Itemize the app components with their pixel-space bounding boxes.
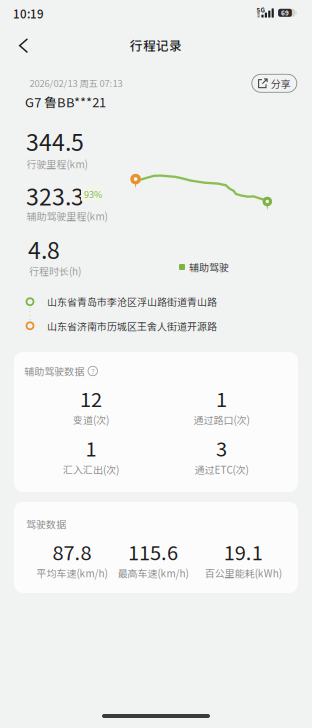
staticText: 10:19 bbox=[13, 5, 44, 22]
staticText: 3 bbox=[216, 433, 227, 462]
staticText: 323.3 bbox=[26, 179, 84, 212]
button[interactable]: 分享 bbox=[252, 74, 297, 92]
staticText: 1 bbox=[85, 433, 96, 462]
staticText: 69 bbox=[281, 8, 289, 17]
staticText: 驾驶数据 bbox=[26, 517, 66, 531]
button[interactable]: Back bbox=[6, 28, 40, 62]
staticText: G7 鲁BB***21 bbox=[25, 92, 106, 111]
staticText: 分享 bbox=[271, 76, 291, 91]
staticText: 5G bbox=[256, 5, 264, 14]
staticText: 通过路口(次) bbox=[193, 412, 249, 427]
staticText: 汇入汇出(次) bbox=[63, 462, 119, 477]
staticText: 山东省青岛市李沧区浮山路街道青山路 bbox=[47, 294, 217, 309]
staticText: 最高车速(km/h) bbox=[117, 566, 188, 580]
staticText: 辅助驾驶里程(km) bbox=[26, 209, 107, 223]
staticText: 12 bbox=[80, 384, 102, 413]
staticText: 2026/02/13 周五 07:13 bbox=[29, 76, 122, 90]
staticText: 行程记录 bbox=[130, 36, 182, 54]
staticText: 山东省济南市历城区王舍人街道开源路 bbox=[47, 319, 217, 333]
staticText: 平均车速(km/h) bbox=[36, 566, 107, 580]
staticText: 93% bbox=[84, 187, 102, 200]
staticText: 变道(次) bbox=[73, 412, 109, 427]
staticText: 344.5 bbox=[26, 124, 84, 158]
staticText: 87.8 bbox=[52, 537, 91, 566]
staticText: 19.1 bbox=[224, 537, 263, 566]
staticText: 行程时长(h) bbox=[29, 264, 81, 278]
staticText: 辅助驾驶数据 bbox=[24, 364, 84, 378]
staticText: ? bbox=[91, 366, 94, 376]
staticText: 115.6 bbox=[128, 537, 178, 566]
staticText: 辅助驾驶 bbox=[189, 260, 229, 274]
staticText: 行驶里程(km) bbox=[26, 157, 87, 171]
staticText: 通过ETC(次) bbox=[194, 462, 248, 477]
staticText: 百公里能耗(kWh) bbox=[205, 566, 282, 580]
staticText: 1 bbox=[216, 384, 227, 413]
staticText: 4.8 bbox=[28, 232, 60, 266]
